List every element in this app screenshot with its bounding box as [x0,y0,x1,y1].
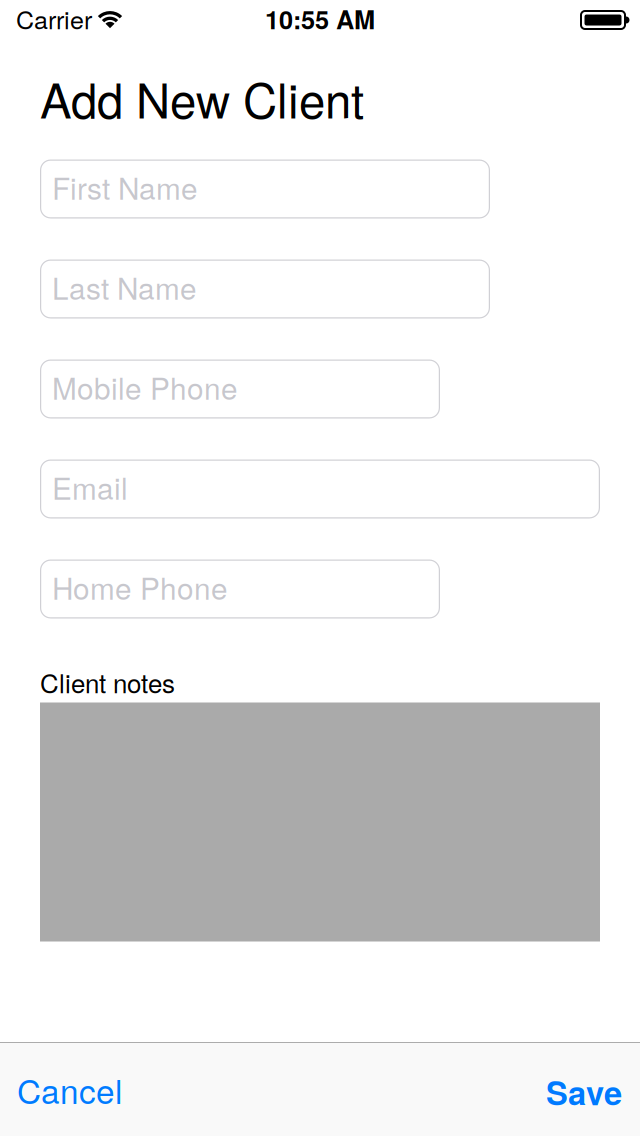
staticText: First Name [52,166,198,208]
button[interactable]: Email [40,459,600,518]
staticText: Last Name [52,266,197,308]
staticText: Mobile Phone [52,366,238,408]
staticText: Email [52,466,128,508]
staticText: Carrier [16,1,92,36]
button[interactable]: Last Name [40,259,490,318]
staticText: Client notes [40,663,175,700]
staticText: Home Phone [52,566,228,608]
staticText: Save [546,1069,622,1115]
button[interactable]: Mobile Phone [40,359,440,418]
button[interactable]: Cancel [17,1066,122,1113]
button[interactable]: Client notes [40,702,600,941]
button[interactable]: Home Phone [40,559,440,618]
button[interactable]: First Name [40,159,490,218]
staticText: 10:55 AM [265,1,375,37]
staticText: Cancel [17,1066,122,1113]
button[interactable]: Save [546,1064,622,1115]
staticText: Add New Client [40,64,364,132]
